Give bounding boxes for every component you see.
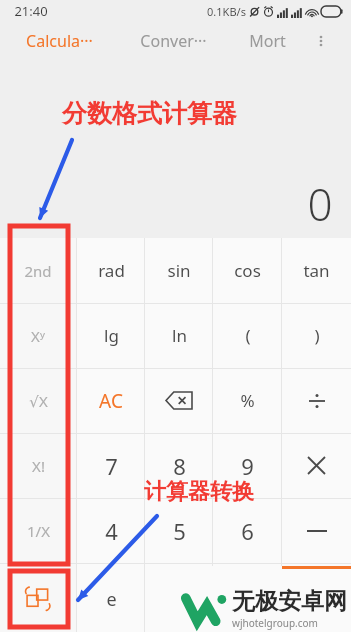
staticText: lg [104, 324, 119, 347]
staticText: 4 [105, 516, 118, 546]
staticText: AC [99, 388, 123, 414]
button[interactable]: Mort [228, 22, 306, 60]
staticText: ) [314, 324, 320, 347]
button[interactable] [282, 498, 351, 563]
button[interactable]: ) [282, 303, 351, 368]
button[interactable]: 3 [213, 563, 282, 628]
button[interactable]: e [77, 566, 145, 632]
staticText: 5 [173, 516, 186, 546]
button[interactable]: 6 [213, 498, 282, 563]
button[interactable]: Delete [145, 368, 213, 433]
staticText: √X [29, 391, 48, 411]
staticText: 2 [173, 581, 186, 611]
button[interactable] [282, 368, 351, 433]
staticText: Conver··· [140, 30, 207, 52]
staticText: X! [32, 456, 45, 476]
staticText: tan [303, 259, 330, 282]
button[interactable] [282, 433, 351, 498]
staticText: 21:40 [14, 2, 48, 20]
button[interactable]: 1 [77, 563, 145, 628]
staticText: 7 [105, 451, 118, 481]
button[interactable]: π [0, 563, 76, 628]
button[interactable]: Conver··· [118, 22, 228, 60]
staticText: wjhotelgroup.com [232, 616, 318, 630]
button[interactable] [282, 563, 351, 628]
button[interactable]: rad [77, 238, 145, 303]
button[interactable] [145, 566, 282, 632]
button[interactable] [282, 566, 351, 632]
staticText: 计算器转换 [144, 478, 254, 506]
button[interactable]: cos [213, 238, 282, 303]
staticText: % [240, 389, 255, 412]
button[interactable]: √X [0, 368, 76, 433]
staticText: cos [234, 259, 261, 282]
staticText: 1/X [27, 521, 50, 541]
staticText: 6 [241, 516, 254, 546]
staticText: 0 [307, 174, 333, 234]
staticText: Xʸ [31, 326, 45, 346]
staticText: 8 [173, 451, 186, 481]
button[interactable]: AC [77, 368, 145, 433]
button[interactable]: lg [77, 303, 145, 368]
staticText: 无极安卓网 [232, 587, 347, 616]
staticText: 2nd [24, 261, 52, 281]
button[interactable]: Switch calculator mode [0, 566, 76, 632]
staticText: ln [172, 324, 187, 347]
staticText: ( [245, 324, 251, 347]
staticText: 0.1KB/s [207, 4, 246, 19]
button[interactable]: 9 [213, 433, 282, 498]
button[interactable]: 8 [145, 433, 213, 498]
staticText: Mort [249, 30, 286, 52]
staticText: sin [167, 259, 191, 282]
staticText: 1 [105, 581, 118, 611]
button[interactable]: tan [282, 238, 351, 303]
button[interactable]: X! [0, 433, 76, 498]
staticText: 3 [241, 581, 254, 611]
button[interactable]: 5 [145, 498, 213, 563]
other: Delete [166, 392, 192, 409]
button[interactable]: 2 [145, 563, 213, 628]
button[interactable]: 2nd [0, 238, 76, 303]
button[interactable]: 1/X [0, 498, 76, 563]
staticText: Calcula··· [26, 30, 93, 52]
button[interactable]: ( [213, 303, 282, 368]
button[interactable]: % [213, 368, 282, 433]
button[interactable]: sin [145, 238, 213, 303]
staticText: 分数格式计算器 [62, 98, 237, 129]
button[interactable]: 4 [77, 498, 145, 563]
button[interactable]: Xʸ [0, 303, 76, 368]
button[interactable]: 7 [77, 433, 145, 498]
staticText: 9 [241, 451, 254, 481]
button[interactable]: More options [306, 22, 336, 60]
button[interactable]: ln [145, 303, 213, 368]
button[interactable]: Calcula··· [0, 22, 118, 60]
staticText: e [106, 587, 117, 612]
staticText: π [33, 586, 43, 606]
staticText: rad [98, 259, 125, 282]
